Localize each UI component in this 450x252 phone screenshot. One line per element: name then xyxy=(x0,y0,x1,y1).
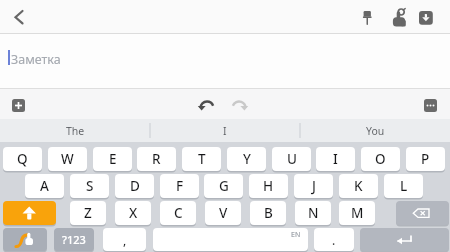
button[interactable]: H xyxy=(249,174,288,198)
staticText: I xyxy=(333,150,338,168)
button[interactable]: I xyxy=(150,119,300,142)
staticText: H xyxy=(263,177,274,195)
staticText: U xyxy=(287,150,297,168)
button[interactable]: S xyxy=(70,174,109,198)
staticText: B xyxy=(264,204,273,222)
button[interactable] xyxy=(417,5,437,29)
staticText: P xyxy=(421,150,430,168)
button[interactable] xyxy=(12,99,25,112)
button[interactable]: G xyxy=(204,174,243,198)
staticText: Q xyxy=(17,150,28,168)
button[interactable]: T xyxy=(182,147,221,171)
button[interactable] xyxy=(388,4,413,30)
button[interactable] xyxy=(357,5,380,29)
staticText: . xyxy=(332,232,336,248)
button[interactable]: Z xyxy=(70,201,106,225)
button[interactable] xyxy=(8,5,32,29)
staticText: E xyxy=(109,150,117,168)
staticText: The xyxy=(66,124,85,138)
staticText: S xyxy=(86,177,94,195)
staticText: X xyxy=(129,204,138,222)
staticText: , xyxy=(123,232,127,248)
button[interactable]: N xyxy=(295,201,331,225)
button[interactable]: B xyxy=(250,201,286,225)
button[interactable]: U xyxy=(272,147,311,171)
button[interactable] xyxy=(153,228,308,251)
button[interactable]: P xyxy=(406,147,445,171)
staticText: D xyxy=(130,177,140,195)
button[interactable]: W xyxy=(48,147,87,171)
button[interactable] xyxy=(3,201,56,225)
staticText: EN xyxy=(291,230,301,240)
staticText: G xyxy=(219,177,229,195)
staticText: F xyxy=(176,177,184,195)
button[interactable] xyxy=(360,228,449,251)
staticText: Заметка xyxy=(11,51,61,68)
button[interactable]: J xyxy=(294,174,333,198)
staticText: J xyxy=(312,177,316,195)
button[interactable] xyxy=(197,98,216,114)
staticText: K xyxy=(354,177,363,195)
button[interactable]: L xyxy=(384,174,423,198)
button[interactable]: C xyxy=(160,201,196,225)
button[interactable]: D xyxy=(115,174,154,198)
staticText: R xyxy=(152,150,161,168)
staticText: I xyxy=(223,124,227,138)
staticText: C xyxy=(174,204,183,222)
staticText: A xyxy=(40,177,49,195)
staticText: W xyxy=(61,150,74,168)
staticText: T xyxy=(198,150,206,168)
button[interactable]: Y xyxy=(227,147,266,171)
button[interactable]: , xyxy=(103,228,146,251)
staticText: Y xyxy=(243,150,251,168)
staticText: L xyxy=(400,177,408,195)
staticText: O xyxy=(375,150,386,168)
button[interactable] xyxy=(230,98,249,114)
button[interactable]: . xyxy=(314,228,354,251)
button[interactable]: F xyxy=(160,174,199,198)
button[interactable]: K xyxy=(339,174,378,198)
button[interactable] xyxy=(424,99,437,112)
staticText: V xyxy=(219,204,228,222)
button[interactable]: ?123 xyxy=(54,228,94,251)
staticText: ?123 xyxy=(62,232,86,247)
button[interactable]: I xyxy=(316,147,355,171)
staticText: N xyxy=(308,204,319,222)
staticText: You xyxy=(366,124,385,138)
button[interactable]: O xyxy=(361,147,400,171)
staticText: Z xyxy=(84,204,92,222)
button[interactable]: X xyxy=(115,201,151,225)
button[interactable]: M xyxy=(339,201,375,225)
staticText: M xyxy=(351,204,364,222)
button[interactable]: V xyxy=(205,201,241,225)
button[interactable]: E xyxy=(93,147,132,171)
button[interactable] xyxy=(396,201,449,225)
button[interactable]: Q xyxy=(3,147,42,171)
button[interactable]: R xyxy=(137,147,176,171)
button[interactable]: A xyxy=(25,174,64,198)
button[interactable] xyxy=(3,228,47,251)
button[interactable]: The xyxy=(0,119,150,142)
button[interactable]: You xyxy=(300,119,450,142)
